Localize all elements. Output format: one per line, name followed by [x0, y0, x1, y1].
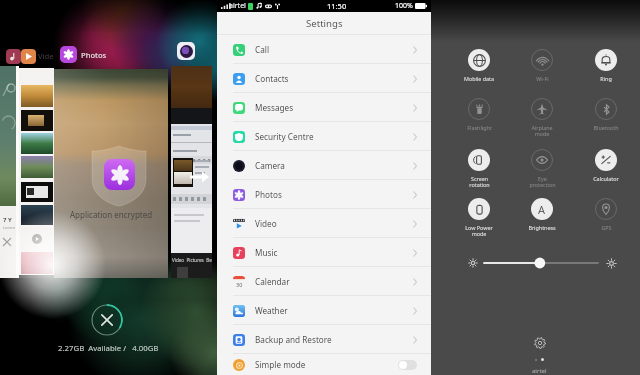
- staticText: Music: [255, 247, 278, 258]
- staticText: Ring: [600, 75, 612, 82]
- staticText: Calendar: [255, 276, 290, 287]
- staticText: Low Power mode: [465, 224, 493, 238]
- button[interactable]: Settings: [529, 332, 551, 354]
- button[interactable]: Clear all: [91, 304, 123, 336]
- staticText: GPS: [601, 224, 612, 231]
- button[interactable]: Brightness slider: [431, 253, 640, 273]
- button[interactable]: Backup and Restore: [217, 325, 431, 354]
- button[interactable]: Bluetooth: [585, 98, 627, 131]
- staticText: Wi-Fi: [536, 75, 549, 82]
- staticText: Video: [255, 218, 277, 229]
- button[interactable]: Flashlight: [458, 98, 500, 131]
- button[interactable]: Airplane mode: [521, 98, 563, 138]
- button[interactable]: [177, 42, 195, 60]
- button[interactable]: Simple mode: [217, 354, 431, 375]
- button[interactable]: Low Power mode: [458, 198, 500, 238]
- staticText: Application encrypted: [70, 209, 153, 220]
- button[interactable]: Music: [217, 238, 431, 267]
- button[interactable]: Calculator: [585, 149, 627, 182]
- button[interactable]: 30: [217, 267, 431, 296]
- button[interactable]: [60, 46, 77, 63]
- staticText: Brightness: [528, 224, 556, 231]
- staticText: Airplane mode: [531, 124, 553, 138]
- staticText: Vide: [38, 51, 54, 61]
- staticText: Bluetooth: [593, 124, 619, 131]
- staticText: airtel: [532, 367, 547, 375]
- staticText: Call: [255, 44, 269, 55]
- button[interactable]: Ring: [585, 49, 627, 82]
- button[interactable]: Brightness: [521, 198, 563, 231]
- staticText: Flashlight: [467, 124, 492, 131]
- staticText: Photos: [81, 50, 107, 60]
- button[interactable]: Video: [217, 209, 431, 238]
- staticText: 7 Y: [3, 216, 12, 224]
- button[interactable]: [21, 49, 36, 64]
- staticText: Settings: [306, 17, 343, 30]
- staticText: Weather: [255, 305, 288, 316]
- button[interactable]: Camera: [217, 151, 431, 180]
- staticText: Photos: [255, 189, 282, 200]
- button[interactable]: GPS: [585, 198, 627, 231]
- staticText: 30: [236, 281, 243, 288]
- staticText: airtel: [229, 1, 246, 11]
- staticText: Messages: [255, 102, 294, 113]
- button[interactable]: Eye protection: [521, 149, 563, 189]
- button[interactable]: [6, 49, 21, 64]
- staticText: Backup and Restore: [255, 334, 332, 345]
- staticText: Security Centre: [255, 131, 314, 142]
- staticText: 11:50: [327, 1, 347, 11]
- staticText: Contacts: [255, 73, 289, 84]
- button[interactable]: Call: [217, 35, 431, 64]
- staticText: A: [538, 202, 546, 217]
- staticText: Calculator: [593, 175, 619, 182]
- staticText: Eye protection: [529, 175, 556, 189]
- staticText: Video Pictures Be: [172, 257, 212, 263]
- staticText: Simple mode: [255, 359, 306, 370]
- button[interactable]: Weather: [217, 296, 431, 325]
- button[interactable]: Photos: [217, 180, 431, 209]
- staticText: 100%: [395, 1, 413, 11]
- staticText: Screen rotation: [469, 175, 490, 189]
- button[interactable]: Screen rotation: [458, 149, 500, 189]
- button[interactable]: Wi-Fi: [521, 49, 563, 82]
- button[interactable]: Messages: [217, 93, 431, 122]
- button[interactable]: Security Centre: [217, 122, 431, 151]
- button[interactable]: Simple mode toggle: [398, 360, 417, 370]
- staticText: Lorem: [3, 225, 16, 230]
- staticText: Camera: [255, 160, 285, 171]
- button[interactable]: Mobile data: [458, 49, 500, 82]
- button[interactable]: Contacts: [217, 64, 431, 93]
- staticText: 2.27GB Available / 4.00GB: [58, 343, 159, 354]
- staticText: Mobile data: [464, 75, 494, 82]
